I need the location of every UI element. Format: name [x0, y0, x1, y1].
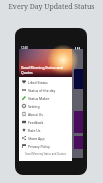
button[interactable]: About Us [19, 110, 72, 118]
staticText: Setting [28, 104, 40, 109]
staticText: Rate Us [28, 128, 41, 133]
button[interactable]: Status Maker [19, 94, 72, 102]
staticText: Status of the day [28, 88, 56, 93]
staticText: Share App [28, 136, 45, 141]
button[interactable]: Share App [19, 134, 72, 142]
staticText: Status Maker [28, 96, 50, 101]
staticText: ▮ ▮ ▮ [75, 46, 81, 49]
staticText: Good Morning Status and Quotes [21, 65, 72, 75]
button[interactable]: Liked Status [19, 78, 72, 86]
staticText: About Us [28, 112, 43, 117]
staticText: Liked Status [28, 80, 48, 85]
button[interactable]: Privacy Policy [19, 142, 72, 150]
button[interactable]: Feedback [19, 118, 72, 126]
button[interactable]: Setting [19, 102, 72, 110]
staticText: Privacy Policy [28, 144, 50, 149]
button[interactable]: Status of the day [19, 86, 72, 94]
staticText: Feedback [28, 120, 44, 125]
button[interactable]: Rate Us [19, 126, 72, 134]
staticText: Every Day Updated Status [0, 2, 103, 12]
staticText: 12:30 [21, 46, 28, 49]
staticText: Good Morning Status and Quotes [19, 152, 72, 156]
